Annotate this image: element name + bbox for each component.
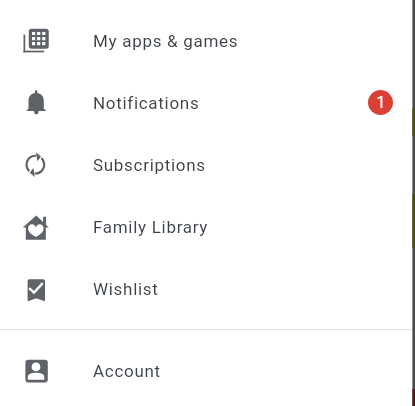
button[interactable]: Subscriptions: [0, 134, 415, 196]
button[interactable]: Wishlist: [0, 258, 415, 320]
staticText: Notifications: [93, 93, 200, 113]
staticText: Subscriptions: [93, 155, 206, 175]
staticText: My apps & games: [93, 31, 239, 51]
staticText: Family Library: [93, 217, 209, 237]
staticText: Wishlist: [93, 279, 159, 299]
button[interactable]: My apps & games: [0, 10, 415, 72]
button[interactable]: Family Library: [0, 196, 415, 258]
staticText: 1: [376, 93, 386, 112]
button[interactable]: Notifications: [0, 72, 415, 134]
staticText: Account: [93, 361, 161, 381]
button[interactable]: Account: [0, 340, 415, 402]
